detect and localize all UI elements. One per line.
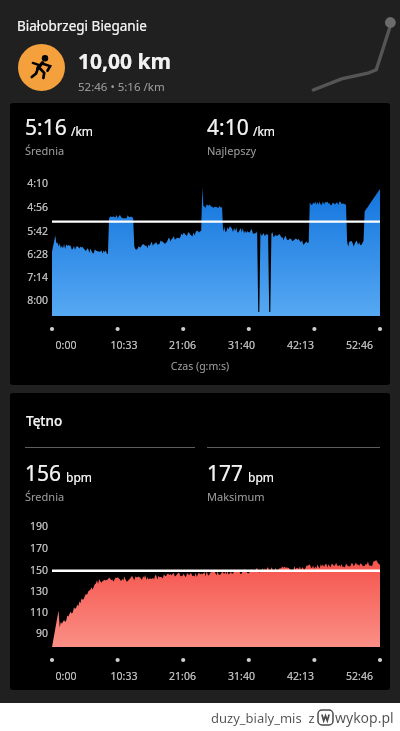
staticText: 52:46 • 5:16 /km — [78, 79, 165, 95]
staticText: 31:40 — [212, 669, 271, 683]
staticText: Maksimum — [207, 489, 265, 504]
staticText: 52:46 — [330, 338, 389, 352]
staticText: 7:14 — [16, 270, 48, 284]
staticText: bpm — [66, 469, 92, 485]
staticText: 10:33 — [95, 669, 153, 683]
staticText: 150 — [16, 563, 48, 577]
staticText: 110 — [16, 605, 48, 619]
staticText: Średnia — [25, 489, 65, 504]
staticText: 21:06 — [153, 338, 212, 352]
staticText: bpm — [248, 469, 274, 485]
staticText: 0:00 — [37, 669, 95, 683]
button[interactable]: Białobrzegi Bieganie — [0, 0, 400, 98]
staticText: 5:42 — [16, 224, 48, 238]
staticText: 4:10 — [207, 113, 249, 142]
staticText: 42:13 — [271, 669, 330, 683]
button[interactable]: 5:16 — [10, 103, 390, 385]
staticText: Tętno — [26, 412, 63, 430]
staticText: duzy_bialy_mis z — [211, 709, 318, 727]
staticText: 4:56 — [16, 200, 48, 214]
staticText: 130 — [16, 584, 48, 598]
staticText: 170 — [16, 541, 48, 555]
staticText: 156 — [25, 459, 62, 488]
other: Running activity — [18, 44, 65, 91]
staticText: 8:00 — [16, 293, 48, 307]
staticText: Czas (g:m:s) — [10, 359, 390, 373]
staticText: 21:06 — [153, 669, 212, 683]
staticText: Najlepszy — [207, 143, 257, 158]
staticText: 0:00 — [37, 338, 95, 352]
staticText: /km — [253, 123, 276, 139]
staticText: Białobrzegi Bieganie — [17, 17, 147, 35]
staticText: Średnia — [25, 143, 65, 158]
staticText: 190 — [16, 519, 48, 533]
staticText: 90 — [16, 626, 48, 640]
staticText: 6:28 — [16, 247, 48, 261]
staticText: wykop.pl — [335, 708, 394, 727]
staticText: 5:16 — [25, 113, 67, 142]
button[interactable]: duzy_bialy_mis z — [0, 703, 400, 731]
staticText: 10,00 km — [78, 47, 171, 76]
staticText: 42:13 — [271, 338, 330, 352]
button[interactable]: Tętno — [10, 393, 390, 690]
staticText: 177 — [207, 459, 244, 488]
staticText: /km — [71, 123, 94, 139]
staticText: 4:10 — [16, 176, 48, 190]
staticText: 31:40 — [212, 338, 271, 352]
staticText: 52:46 — [330, 669, 389, 683]
staticText: 10:33 — [95, 338, 153, 352]
